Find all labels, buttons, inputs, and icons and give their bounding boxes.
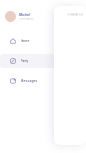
button[interactable]: Messages: [0, 74, 58, 88]
staticText: Conversations: [66, 13, 82, 16]
staticText: Home: [20, 39, 29, 43]
staticText: Messages: [20, 79, 37, 83]
staticText: San Francisco: [19, 17, 33, 20]
button[interactable]: Party: [0, 54, 58, 68]
staticText: Party: [20, 59, 28, 63]
staticText: Michel: [19, 13, 30, 17]
button[interactable]: Home: [0, 34, 58, 48]
